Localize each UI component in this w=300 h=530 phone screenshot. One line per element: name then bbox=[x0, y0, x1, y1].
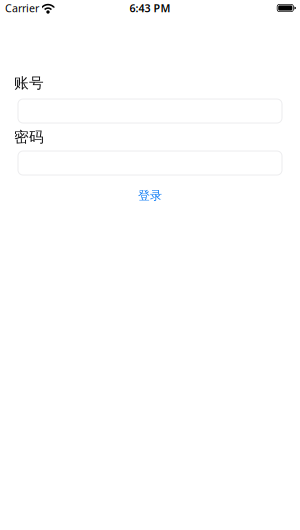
staticText: Carrier bbox=[5, 1, 39, 15]
staticText: 账号 bbox=[14, 74, 44, 92]
staticText: 密码 bbox=[14, 128, 44, 146]
button[interactable]: 登录 bbox=[0, 188, 300, 203]
staticText: 登录 bbox=[138, 188, 162, 203]
staticText: 6:43 PM bbox=[129, 1, 170, 15]
